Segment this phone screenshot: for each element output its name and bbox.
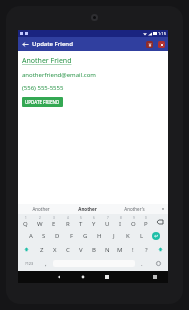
button[interactable]: N <box>101 243 113 256</box>
staticText: 6 <box>93 216 95 220</box>
staticText: P <box>144 220 148 228</box>
button[interactable]: 6 <box>88 215 100 228</box>
staticText: 4 <box>67 216 69 220</box>
staticText: S <box>42 232 46 240</box>
button[interactable]: H <box>93 229 106 242</box>
staticText: 1:15 <box>158 31 166 36</box>
button[interactable]: Another Friend <box>22 56 72 66</box>
staticText: K <box>126 232 130 240</box>
staticText: UPDATE FRIEND <box>25 99 60 105</box>
button[interactable]: Z <box>35 243 48 256</box>
button[interactable]: Another <box>64 204 111 214</box>
button[interactable]: Back <box>51 271 66 283</box>
staticText: Update Friend <box>32 40 73 48</box>
button[interactable]: D <box>51 229 64 242</box>
button[interactable]: Close <box>155 37 168 51</box>
button[interactable]: ! <box>127 243 139 256</box>
staticText: Z <box>40 246 44 254</box>
staticText: D <box>55 232 60 240</box>
button[interactable]: 0 <box>140 215 152 228</box>
button[interactable]: More suggestions <box>158 204 168 214</box>
staticText: (556) 555-5555 <box>22 84 64 92</box>
button[interactable]: 2 <box>33 215 46 228</box>
button[interactable]: 4 <box>61 215 74 228</box>
button[interactable]: S <box>38 229 50 242</box>
button[interactable]: Shift <box>19 243 34 256</box>
staticText: . <box>141 260 143 268</box>
staticText: F <box>70 232 74 240</box>
staticText: ! <box>132 246 134 254</box>
button[interactable]: Emoji <box>149 257 167 270</box>
staticText: U <box>105 220 110 228</box>
button[interactable]: G <box>79 229 92 242</box>
staticText: Another Friend <box>22 56 72 66</box>
staticText: Another's <box>124 206 145 212</box>
staticText: ? <box>145 246 148 254</box>
staticText: T <box>79 220 83 228</box>
button[interactable]: UPDATE FRIEND <box>22 97 63 107</box>
button[interactable]: 3 <box>47 215 60 228</box>
staticText: O <box>131 220 136 228</box>
staticText: A <box>29 232 33 240</box>
staticText: G <box>83 232 88 240</box>
staticText: Y <box>92 220 96 228</box>
staticText: 2 <box>39 216 41 220</box>
staticText: C <box>66 246 70 254</box>
staticText: H <box>97 232 102 240</box>
staticText: 3 <box>53 216 55 220</box>
button[interactable]: J <box>107 229 120 242</box>
staticText: Q <box>23 220 28 228</box>
button[interactable]: , <box>40 257 52 270</box>
button[interactable]: ?123 <box>19 257 39 270</box>
button[interactable]: L <box>135 229 148 242</box>
button[interactable]: Home <box>75 271 90 283</box>
button[interactable]: V <box>75 243 87 256</box>
staticText: anotherfriend@email.com <box>22 71 96 79</box>
button[interactable]: A <box>25 229 37 242</box>
button[interactable]: Another <box>18 204 64 214</box>
staticText: V <box>79 246 83 254</box>
button[interactable]: Menu <box>147 271 162 283</box>
button[interactable]: Delete friend <box>143 37 155 51</box>
staticText: 5 <box>80 216 82 220</box>
button[interactable]: M <box>114 243 126 256</box>
button[interactable]: F <box>65 229 78 242</box>
staticText: E <box>52 220 56 228</box>
staticText: J <box>113 232 115 240</box>
staticText: Another <box>78 206 97 212</box>
button[interactable]: Backspace <box>153 215 167 228</box>
staticText: R <box>66 220 70 228</box>
button[interactable]: Recent apps <box>99 271 114 283</box>
staticText: 8 <box>120 216 122 220</box>
button[interactable]: B <box>88 243 100 256</box>
staticText: I <box>119 220 122 228</box>
staticText: N <box>105 246 110 254</box>
staticText: W <box>37 220 43 228</box>
staticText: L <box>140 232 144 240</box>
button[interactable]: Enter <box>149 229 163 242</box>
button[interactable]: Navigate up <box>18 37 32 51</box>
staticText: 9 <box>133 216 135 220</box>
button[interactable]: X <box>49 243 61 256</box>
button[interactable]: Another's <box>111 204 158 214</box>
staticText: 1 <box>25 216 27 220</box>
button[interactable]: 9 <box>127 215 139 228</box>
button[interactable]: Shift <box>153 243 167 256</box>
button[interactable]: anotherfriend@email.com <box>22 71 96 79</box>
button[interactable]: 1 <box>19 215 32 228</box>
button[interactable]: (556) 555-5555 <box>22 84 64 92</box>
button[interactable]: C <box>62 243 74 256</box>
button[interactable]: ? <box>140 243 152 256</box>
button[interactable]: K <box>121 229 134 242</box>
staticText: M <box>117 246 123 254</box>
staticText: 0 <box>145 216 147 220</box>
button[interactable]: 8 <box>114 215 126 228</box>
button[interactable]: 5 <box>75 215 87 228</box>
staticText: ?123 <box>25 261 34 266</box>
staticText: , <box>45 260 47 268</box>
staticText: 7 <box>107 216 109 220</box>
button[interactable]: 7 <box>101 215 113 228</box>
button[interactable]: . <box>136 257 148 270</box>
staticText: Another <box>32 206 50 212</box>
